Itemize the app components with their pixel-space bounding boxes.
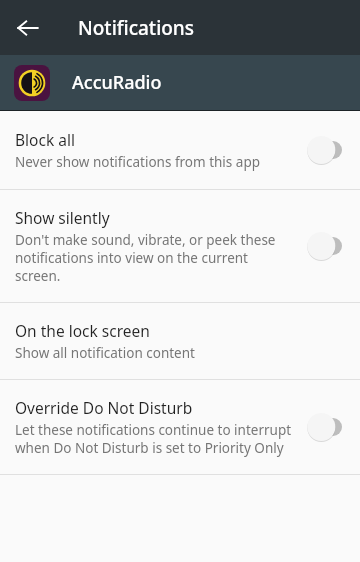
staticText: Block all <box>15 129 75 150</box>
button[interactable]: Toggle <box>302 412 348 442</box>
button[interactable]: Toggle <box>302 135 348 165</box>
staticText: Override Do Not Disturb <box>15 397 193 418</box>
staticText: Notifications <box>78 15 195 41</box>
staticText: Don't make sound, vibrate, or peek these… <box>15 231 292 285</box>
button[interactable]: AccuRadio <box>0 55 360 110</box>
staticText: On the lock screen <box>15 320 150 341</box>
button[interactable]: Block all <box>0 111 360 189</box>
button[interactable]: Toggle <box>302 231 348 261</box>
staticText: Show silently <box>15 207 110 228</box>
staticText: AccuRadio <box>72 70 162 95</box>
button[interactable]: Back <box>8 8 48 48</box>
staticText: Never show notifications from this app <box>15 153 260 171</box>
button[interactable]: On the lock screen <box>0 303 360 379</box>
staticText: Show all notification content <box>15 344 195 362</box>
staticText: Let these notifications continue to inte… <box>15 421 292 457</box>
button[interactable]: Show silently <box>0 190 360 302</box>
button[interactable]: Override Do Not Disturb <box>0 380 360 474</box>
